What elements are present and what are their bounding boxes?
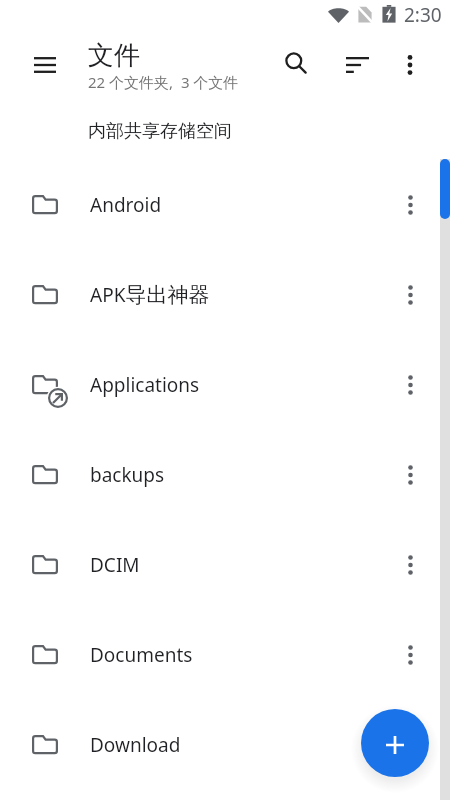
button[interactable]: Scroll position (440, 159, 450, 219)
button[interactable]: More options for Download (386, 721, 434, 769)
button[interactable]: Documents (0, 610, 450, 700)
staticText: Applications (90, 368, 200, 398)
button[interactable]: More options (386, 41, 434, 89)
staticText: Download (90, 728, 181, 758)
button[interactable]: Sort (334, 38, 382, 86)
button[interactable]: Download (0, 700, 450, 790)
staticText: backups (90, 458, 165, 488)
button[interactable]: More options for Documents (386, 631, 434, 679)
staticText: 22 个文件夹, 3 个文件 (88, 72, 239, 92)
staticText: APK导出神器 (90, 278, 210, 309)
staticText: 文件 (88, 39, 140, 72)
button[interactable]: More options for backups (386, 451, 434, 499)
button[interactable]: Search (270, 38, 318, 86)
button[interactable]: Applications (0, 340, 450, 430)
staticText: Android (90, 188, 162, 218)
button[interactable]: Android (0, 160, 450, 250)
button[interactable]: More options for APK导出神器 (386, 271, 434, 319)
button[interactable]: DCIM (0, 520, 450, 610)
staticText: 2:30 (404, 2, 442, 28)
button[interactable]: More options for Android (386, 181, 434, 229)
staticText: Documents (90, 638, 193, 668)
button[interactable]: More options for DCIM (386, 541, 434, 589)
button[interactable]: Create new (361, 709, 429, 777)
staticText: 内部共享存储空间 (88, 120, 232, 143)
button[interactable]: APK导出神器 (0, 250, 450, 340)
staticText: DCIM (90, 548, 140, 578)
button[interactable]: More options for Applications (386, 361, 434, 409)
button[interactable]: backups (0, 430, 450, 520)
button[interactable]: Open navigation drawer (21, 41, 69, 89)
